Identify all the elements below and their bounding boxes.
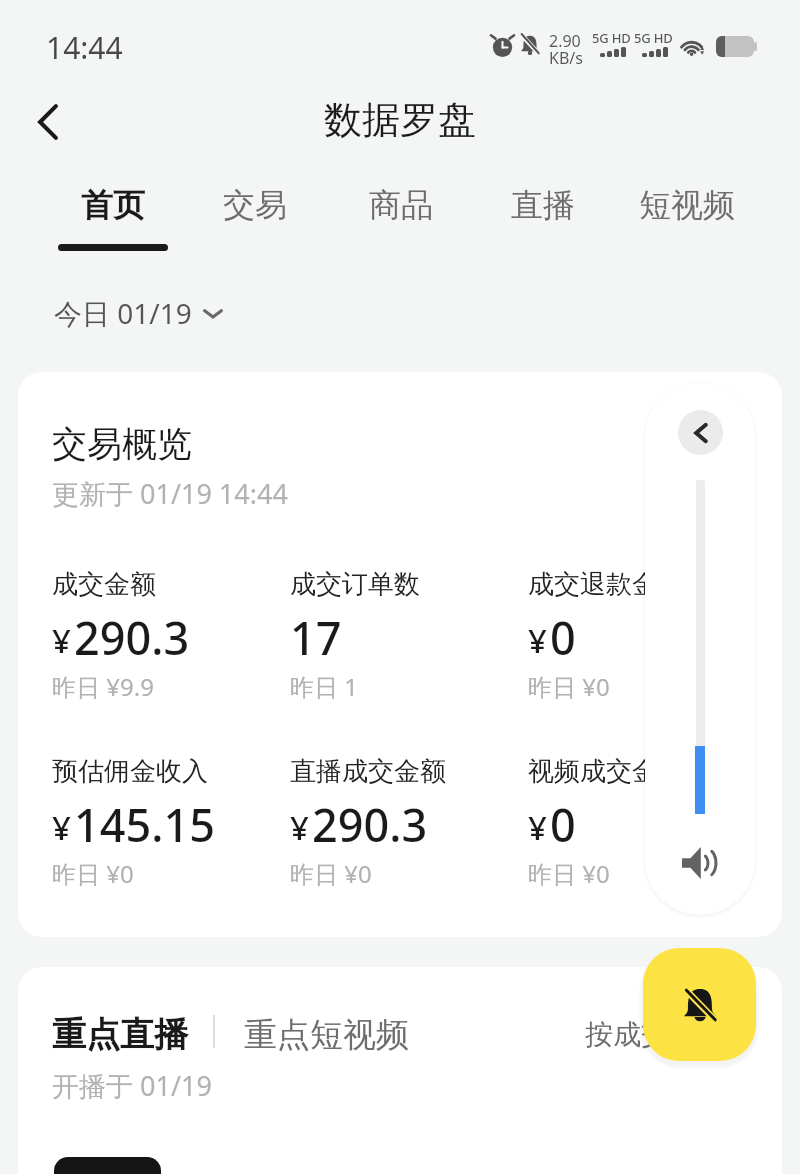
staticText: 首页 xyxy=(81,185,145,225)
button[interactable]: 重点短视频 xyxy=(244,1014,409,1056)
staticText: 290.3 xyxy=(312,794,428,855)
staticText: 直播成交金额 xyxy=(290,755,446,788)
staticText: 昨日 ¥0 xyxy=(528,857,610,890)
button[interactable]: 交易 xyxy=(195,185,315,243)
staticText: 更新于 01/19 14:44 xyxy=(52,475,288,512)
staticText: 14:44 xyxy=(46,27,123,68)
staticText: 开播于 01/19 xyxy=(52,1067,212,1104)
button[interactable]: Collapse volume panel xyxy=(678,410,723,455)
staticText: 交易 xyxy=(223,185,287,225)
button[interactable]: 按成交额 xyxy=(585,1017,697,1052)
staticText: ¥ xyxy=(52,618,71,663)
button[interactable]: 直播 xyxy=(483,185,603,243)
button[interactable]: 短视频 xyxy=(627,185,747,243)
staticText: 预估佣金收入 xyxy=(52,755,208,788)
staticText: 17 xyxy=(290,607,342,668)
staticText: 成交订单数 xyxy=(290,568,420,601)
staticText: 0 xyxy=(550,607,576,668)
staticText: 成交金额 xyxy=(52,568,156,601)
staticText: 0 xyxy=(550,794,576,855)
staticText: ¥ xyxy=(528,618,547,663)
staticText: 商品 xyxy=(369,185,433,225)
staticText: 交易概览 xyxy=(52,422,192,466)
staticText: 昨日 ¥9.9 xyxy=(52,670,154,703)
staticText: 5G HD xyxy=(634,29,673,47)
staticText: 按成交额 xyxy=(585,1017,697,1052)
staticText: 昨日 ¥0 xyxy=(52,857,134,890)
staticText: 昨日 ¥0 xyxy=(290,857,372,890)
button[interactable]: 交易概览 xyxy=(18,372,782,937)
staticText: 290.3 xyxy=(74,607,190,668)
button[interactable]: Volume xyxy=(677,840,723,886)
staticText: 重点直播 xyxy=(52,1013,188,1056)
button[interactable]: Silent mode xyxy=(643,948,756,1061)
staticText: 视频成交金额 xyxy=(528,755,684,788)
staticText: 今日 01/19 xyxy=(54,294,192,332)
staticText: 短视频 xyxy=(639,185,735,225)
button[interactable]: Back xyxy=(20,94,76,150)
staticText: 5G HD xyxy=(592,29,631,47)
staticText: 数据罗盘 xyxy=(324,96,476,144)
button[interactable]: 重点直播 xyxy=(52,1013,188,1056)
button[interactable]: 今日 01/19 xyxy=(54,294,224,332)
staticText: ¥ xyxy=(290,805,309,850)
staticText: ¥ xyxy=(52,805,71,850)
staticText: 重点短视频 xyxy=(244,1014,409,1056)
staticText: 直播 xyxy=(511,185,575,225)
button[interactable]: 商品 xyxy=(341,185,461,243)
staticText: 昨日 1 xyxy=(290,670,358,703)
staticText: ¥ xyxy=(528,805,547,850)
button[interactable]: 首页 xyxy=(53,185,173,243)
staticText: 成交退款金额 xyxy=(528,568,684,601)
staticText: 昨日 ¥0 xyxy=(528,670,610,703)
staticText: 145.15 xyxy=(74,794,215,855)
staticText: 2.90 KB/s xyxy=(549,30,583,69)
